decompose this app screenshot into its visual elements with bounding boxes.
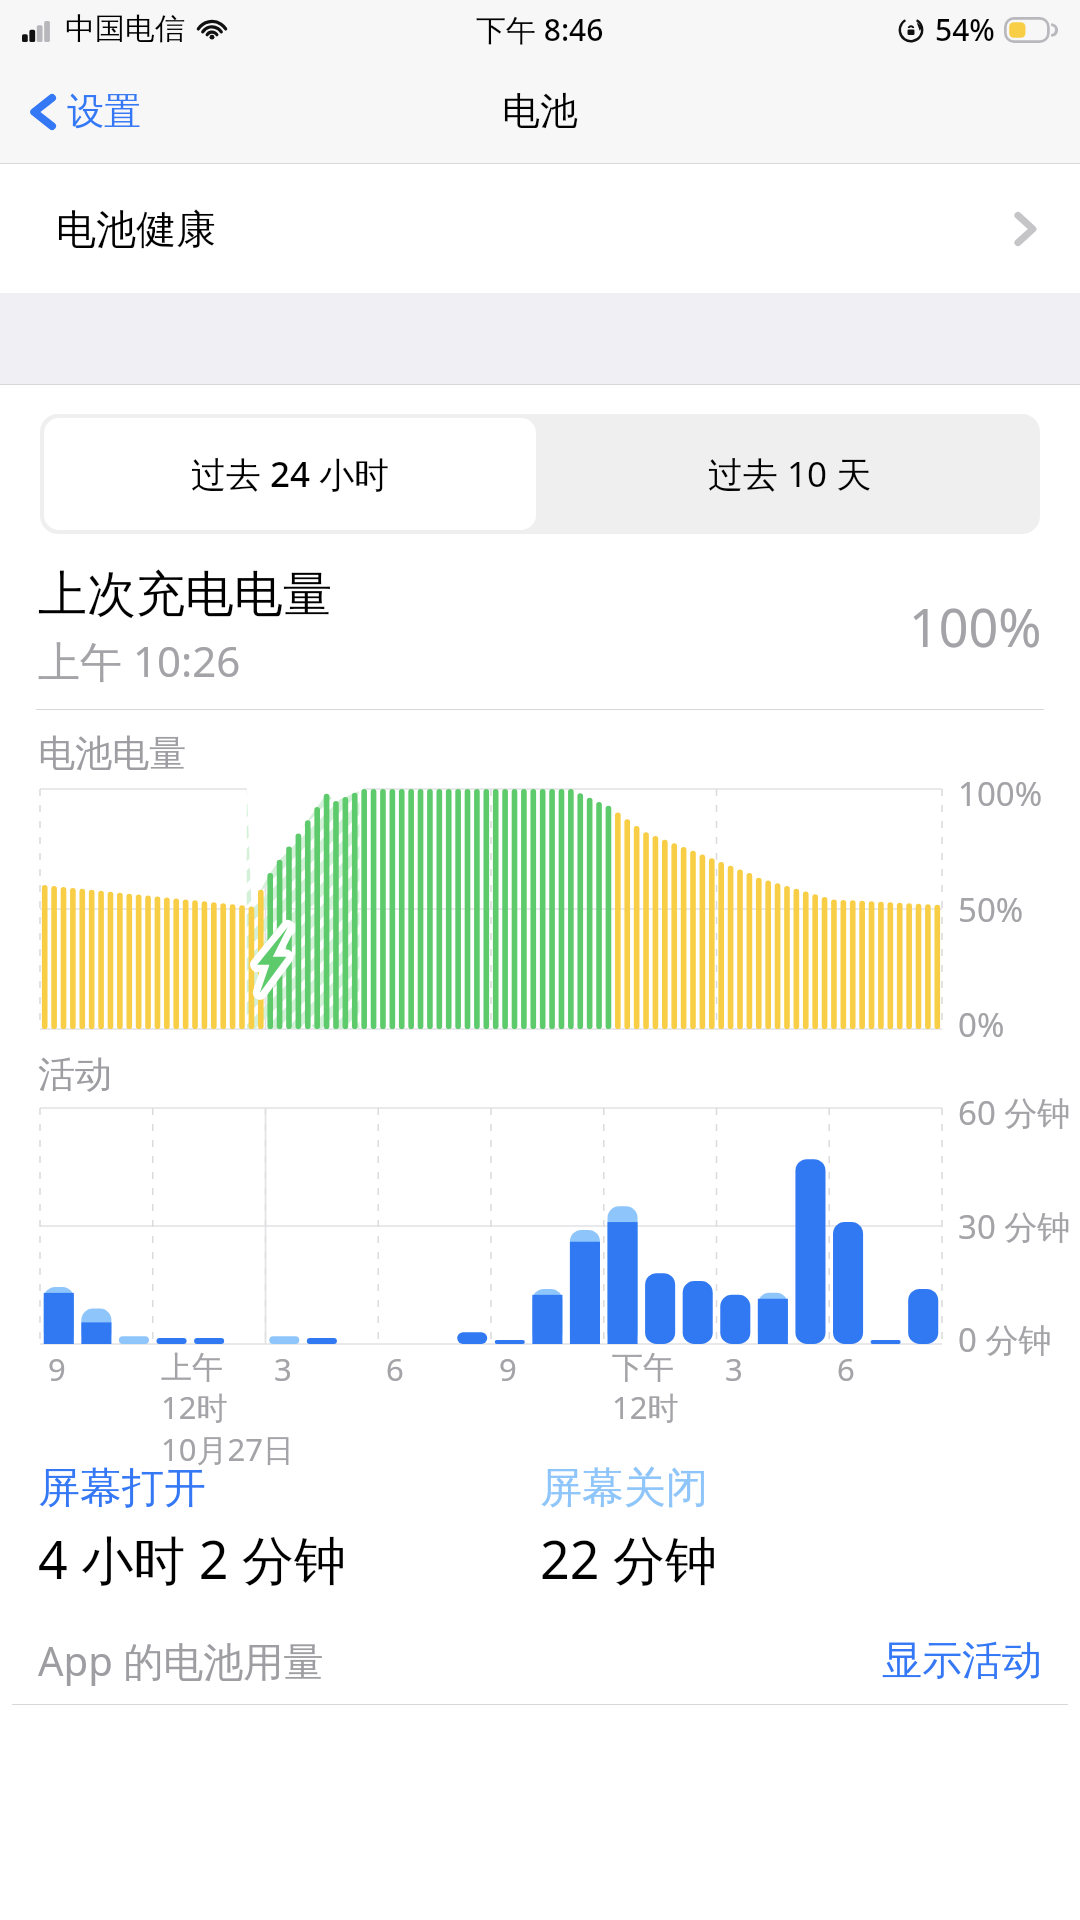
staticText: 上午 12时 10月27日 [161,1348,294,1466]
staticText: 4 小时 2 分钟 [38,1523,347,1594]
staticText: 0 分钟 [958,1317,1052,1362]
staticText: 电池健康 [56,204,216,254]
staticText: 9 [499,1348,517,1390]
staticText: 中国电信 [65,10,185,48]
staticText: 22 分钟 [540,1523,718,1594]
staticText: 9 [48,1348,66,1390]
button[interactable]: 过去 24 小时 [44,418,536,530]
button[interactable]: 电池健康 [0,164,1080,293]
staticText: 显示活动 [882,1635,1042,1685]
staticText: 下午 8:46 [476,9,604,50]
staticText: 100% [909,591,1042,662]
staticText: 60 分钟 [958,1090,1071,1135]
staticText: 6 [837,1348,855,1390]
staticText: 活动 [38,1051,112,1098]
staticText: 过去 24 小时 [191,450,390,498]
staticText: 3 [725,1348,743,1390]
staticText: 屏幕关闭 [540,1462,708,1515]
button[interactable]: 显示活动 [864,1625,1080,1695]
button[interactable]: 过去 10 天 [540,414,1040,534]
staticText: 上次充电电量 [38,564,332,626]
staticText: 54% [935,9,995,50]
staticText: 设置 [67,88,141,135]
staticText: 过去 10 天 [708,450,872,498]
staticText: 6 [386,1348,404,1390]
staticText: 100% [958,771,1043,816]
staticText: 下午 12时 [612,1348,679,1429]
staticText: 上午 10:26 [38,632,241,689]
staticText: 电池 [502,87,578,135]
staticText: 0% [958,1002,1005,1047]
staticText: App 的电池用量 [38,1633,324,1688]
staticText: 50% [958,887,1024,932]
staticText: 30 分钟 [958,1204,1071,1249]
button[interactable]: 设置 [26,80,145,143]
staticText: 电池电量 [38,730,186,777]
staticText: 屏幕打开 [38,1462,206,1515]
staticText: 3 [274,1348,292,1390]
